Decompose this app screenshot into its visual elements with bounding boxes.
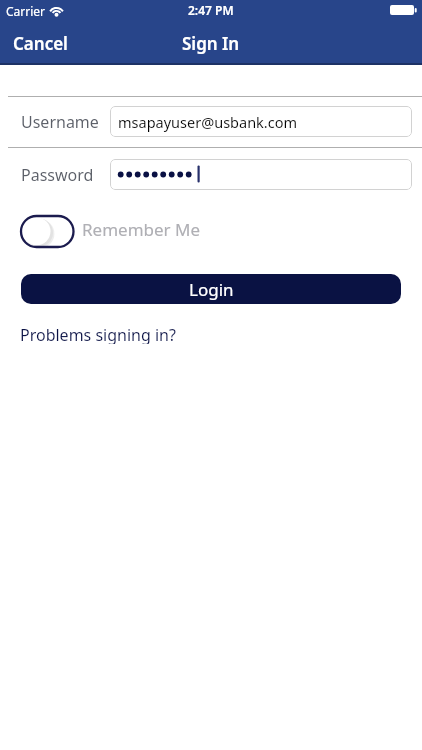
button[interactable]: Problems signing in? (20, 324, 200, 344)
staticText: 2:47 PM (188, 2, 234, 18)
staticText: Remember Me (82, 218, 201, 241)
button[interactable] (19, 212, 79, 254)
button[interactable]: Cancel (8, 29, 78, 57)
staticText: Carrier (6, 3, 46, 19)
staticText: Password (21, 164, 94, 186)
button[interactable]: Login (21, 274, 401, 304)
staticText: Username (21, 111, 99, 133)
staticText: Sign In (182, 32, 240, 55)
button[interactable] (110, 159, 412, 190)
staticText: msapayuser@usbank.com (118, 112, 298, 132)
staticText: Problems signing in? (20, 324, 176, 344)
staticText: Cancel (13, 32, 68, 55)
button[interactable]: msapayuser@usbank.com (110, 106, 412, 137)
staticText: Login (189, 278, 234, 301)
